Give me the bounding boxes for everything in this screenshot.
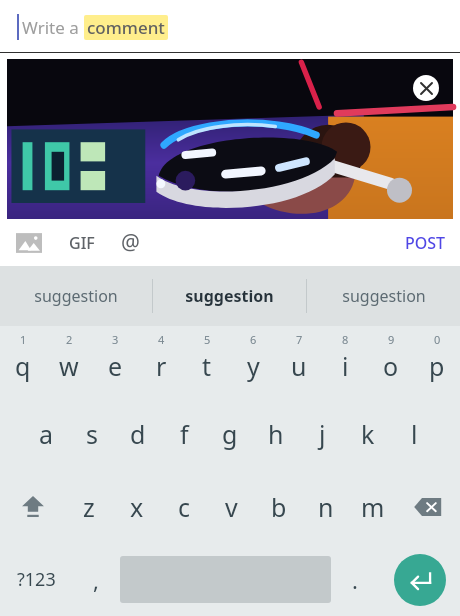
staticText: 6 (250, 332, 257, 347)
staticText: ?123 (17, 567, 56, 592)
staticText: n (318, 490, 334, 524)
button[interactable]: n (302, 470, 349, 543)
staticText: 4 (158, 332, 165, 347)
button[interactable]: 8 (322, 326, 368, 398)
staticText: 1 (20, 332, 27, 347)
button[interactable]: s (69, 398, 115, 470)
staticText: 8 (342, 332, 349, 347)
staticText: i (342, 349, 349, 383)
staticText: 0 (434, 332, 441, 347)
staticText: . (352, 565, 358, 595)
button[interactable]: 9 (368, 326, 414, 398)
staticText: s (86, 417, 98, 451)
button[interactable]: Shift (0, 470, 65, 543)
button[interactable]: 3 (92, 326, 138, 398)
staticText: 5 (204, 332, 211, 347)
staticText: m (361, 490, 385, 524)
button[interactable]: Remove image (413, 75, 439, 101)
staticText: q (15, 349, 31, 383)
staticText: 3 (112, 332, 119, 347)
button[interactable]: Backspace (396, 470, 460, 543)
button[interactable]: g (207, 398, 253, 470)
button[interactable]: @ (117, 224, 144, 261)
button[interactable]: v (208, 470, 255, 543)
staticText: suggestion (34, 285, 118, 307)
staticText: x (130, 490, 144, 524)
button[interactable]: POST (395, 226, 456, 260)
button[interactable]: GIF (63, 226, 101, 260)
button[interactable]: c (161, 470, 208, 543)
staticText: 7 (296, 332, 303, 347)
button[interactable]: 5 (184, 326, 230, 398)
button[interactable]: l (391, 398, 437, 470)
button[interactable]: 0 (414, 326, 460, 398)
staticText: suggestion (342, 285, 426, 307)
staticText: y (247, 349, 260, 383)
staticText: d (130, 417, 146, 451)
staticText: c (178, 490, 191, 524)
staticText: r (156, 349, 167, 383)
button[interactable]: 1 (0, 326, 46, 398)
staticText: t (202, 349, 212, 383)
button[interactable]: x (113, 470, 161, 543)
staticText: g (222, 417, 238, 451)
staticText: Write a (22, 16, 84, 39)
button[interactable]: j (299, 398, 345, 470)
staticText: a (39, 417, 54, 451)
staticText: z (83, 490, 95, 524)
staticText: k (361, 417, 375, 451)
staticText: 2 (66, 332, 73, 347)
staticText: comment (87, 16, 165, 39)
staticText: b (271, 490, 287, 524)
staticText: h (268, 417, 284, 451)
button[interactable]: Write a (0, 0, 460, 53)
staticText: , (93, 565, 99, 595)
button[interactable]: Add image (13, 227, 45, 259)
button[interactable]: Enter (394, 554, 446, 606)
staticText: e (108, 349, 123, 383)
staticText: j (319, 417, 326, 451)
staticText: l (411, 417, 418, 451)
button[interactable]: h (253, 398, 299, 470)
button[interactable]: . (331, 543, 379, 616)
staticText: GIF (69, 232, 95, 254)
staticText: o (383, 349, 399, 383)
staticText: suggestion (185, 285, 274, 307)
button[interactable]: ?123 (0, 543, 72, 616)
button[interactable]: 4 (138, 326, 184, 398)
button[interactable]: 2 (46, 326, 92, 398)
staticText: @ (121, 228, 140, 257)
button[interactable]: z (65, 470, 113, 543)
button[interactable]: suggestion (307, 266, 460, 326)
button[interactable]: 6 (230, 326, 276, 398)
button[interactable]: suggestion (0, 266, 152, 326)
button[interactable]: , (72, 543, 120, 616)
button[interactable]: 7 (276, 326, 322, 398)
staticText: v (225, 490, 238, 524)
button[interactable]: a (23, 398, 69, 470)
button[interactable]: b (255, 470, 302, 543)
button[interactable]: f (161, 398, 207, 470)
staticText: POST (405, 232, 446, 254)
button[interactable]: m (349, 470, 396, 543)
staticText: u (291, 349, 307, 383)
staticText: w (59, 349, 79, 383)
staticText: 9 (388, 332, 395, 347)
staticText: p (429, 349, 445, 383)
button[interactable]: k (345, 398, 391, 470)
button[interactable]: suggestion (153, 266, 306, 326)
staticText: f (180, 417, 189, 451)
button[interactable]: d (115, 398, 161, 470)
